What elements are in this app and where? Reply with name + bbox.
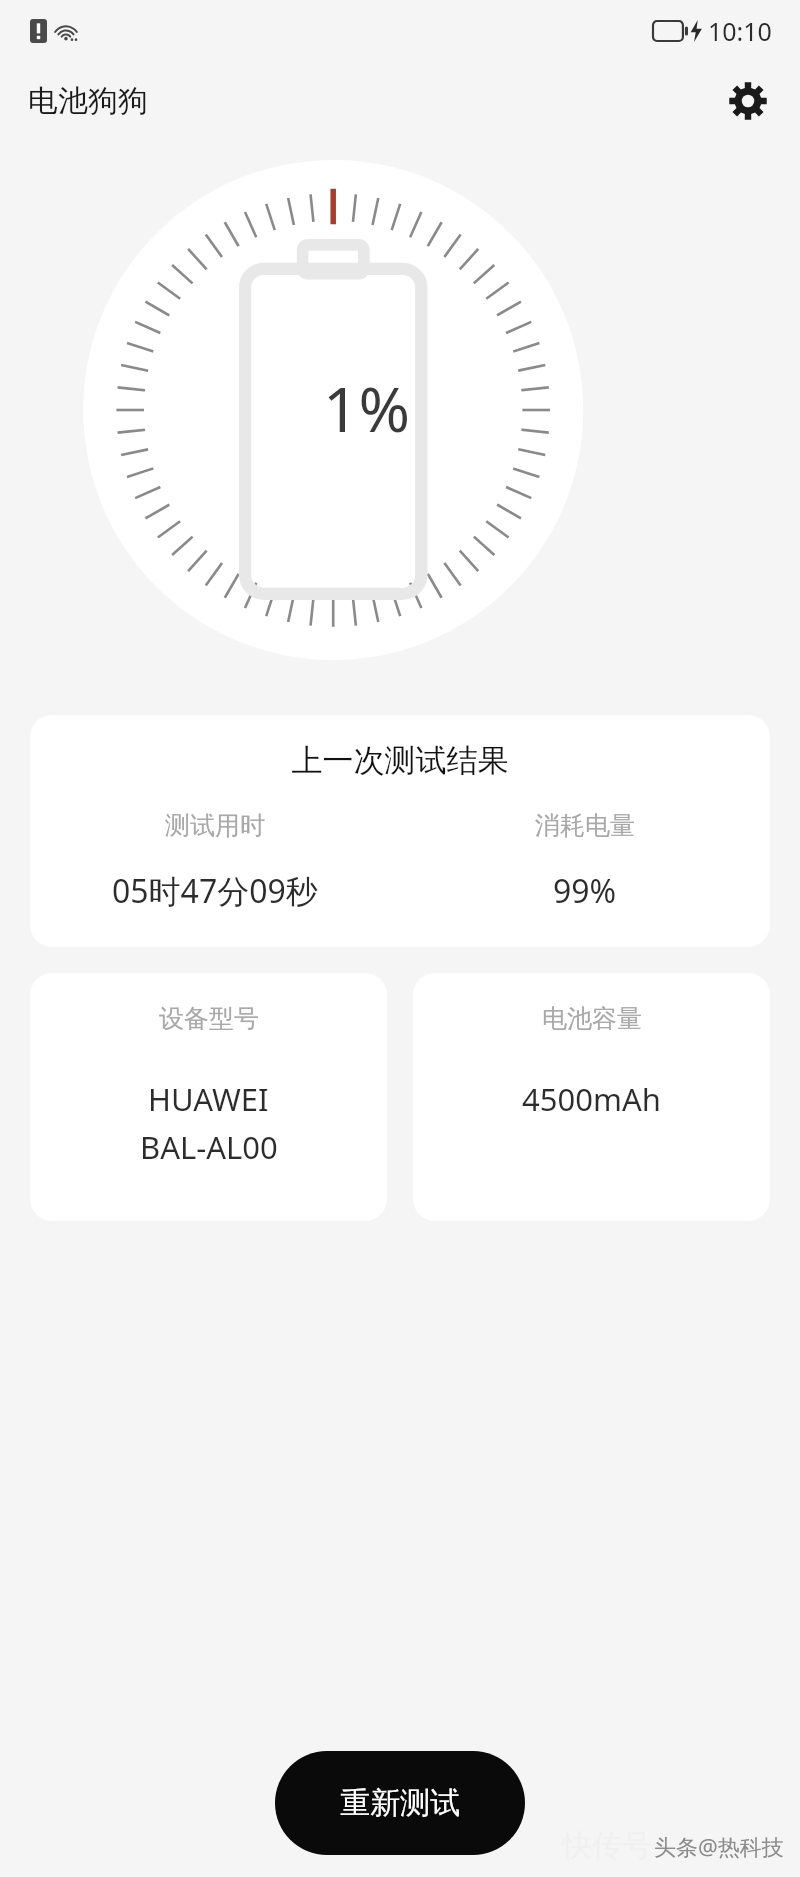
staticText: 10:10: [708, 14, 772, 48]
staticText: 1%: [323, 366, 410, 450]
staticText: 消耗电量: [535, 810, 635, 841]
staticText: 电池容量: [542, 1003, 642, 1034]
staticText: 头条@热科技: [654, 1831, 784, 1861]
staticText: 测试用时: [165, 810, 265, 841]
staticText: 设备型号: [159, 1003, 259, 1034]
button[interactable]: Settings: [722, 75, 774, 127]
button[interactable]: 设备型号: [30, 973, 387, 1221]
staticText: BAL-AL00: [140, 1126, 278, 1168]
staticText: 电池狗狗: [28, 82, 148, 120]
staticText: 上一次测试结果: [30, 741, 770, 780]
button[interactable]: 电池容量: [413, 973, 770, 1221]
button[interactable]: 上一次测试结果: [30, 715, 770, 947]
button[interactable]: 重新测试: [275, 1751, 525, 1855]
staticText: 99%: [553, 869, 617, 913]
staticText: 重新测试: [340, 1784, 460, 1822]
staticText: 05时47分09秒: [112, 869, 318, 913]
staticText: HUAWEI: [148, 1078, 269, 1120]
staticText: 4500mAh: [522, 1078, 661, 1120]
